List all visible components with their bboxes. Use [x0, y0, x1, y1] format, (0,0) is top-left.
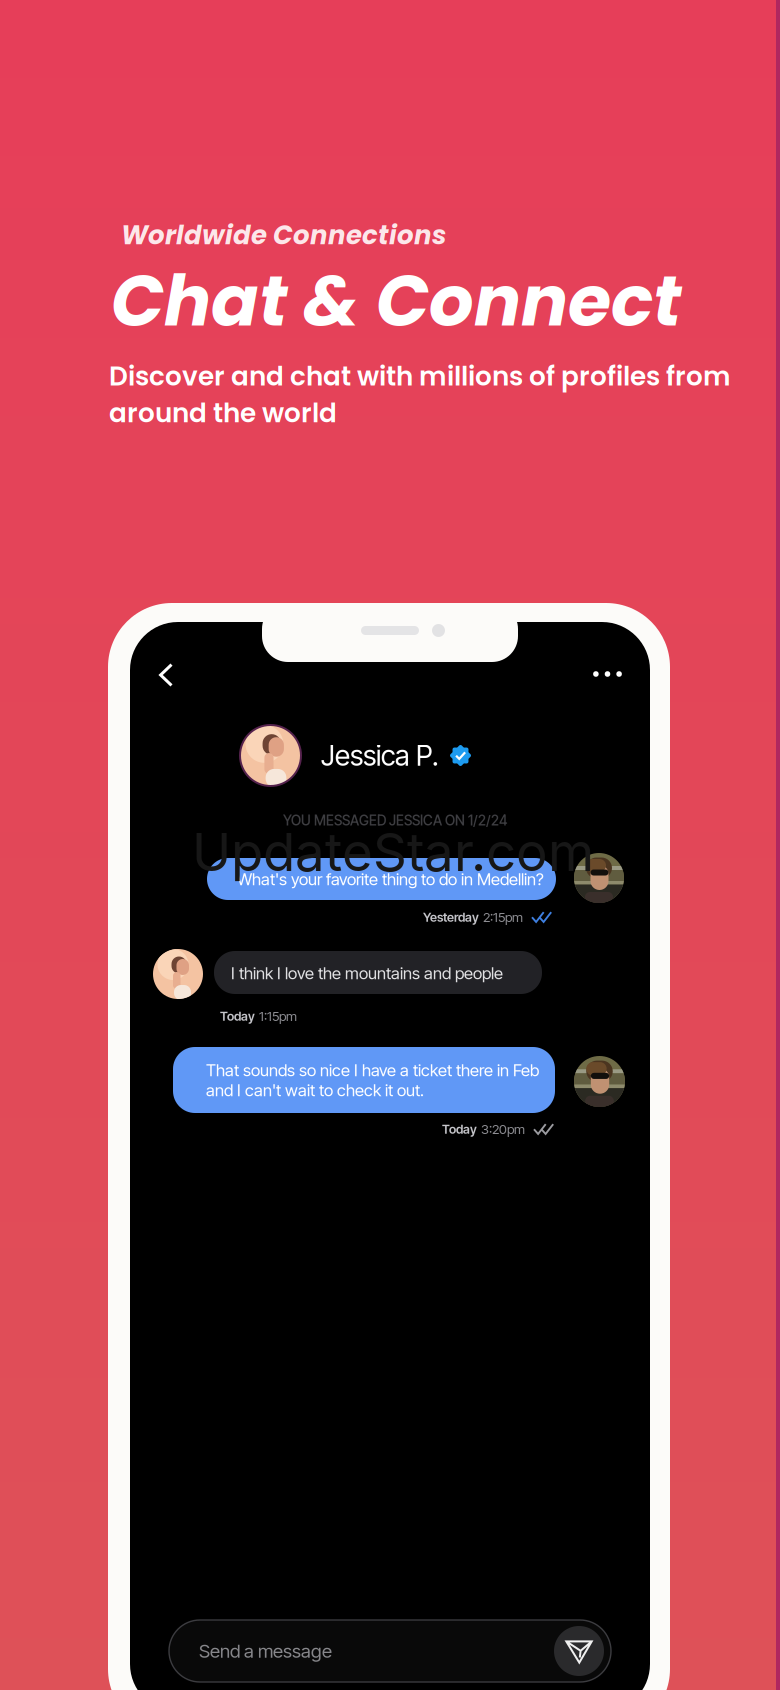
button[interactable]: More options: [583, 659, 632, 689]
staticText: Today: [442, 1121, 477, 1137]
staticText: 3:20pm: [481, 1121, 525, 1137]
staticText: Chat & Connect: [111, 252, 681, 350]
button[interactable]: Jessica P.: [240, 725, 471, 786]
staticText: I think I love the mountains and people: [231, 963, 503, 983]
staticText: Discover and chat with millions of profi…: [109, 358, 731, 431]
staticText: Jessica P.: [321, 739, 439, 772]
staticText: 2:15pm: [483, 909, 523, 925]
staticText: Yesterday: [423, 909, 479, 925]
button[interactable]: Send a message: [169, 1620, 611, 1682]
staticText: That sounds so nice I have a ticket ther…: [206, 1060, 539, 1100]
button[interactable]: Back: [147, 651, 185, 699]
staticText: 1:15pm: [259, 1008, 297, 1024]
staticText: Worldwide Connections: [121, 217, 447, 253]
staticText: What's your favorite thing to do in Mede…: [237, 869, 544, 889]
staticText: Send a message: [199, 1640, 332, 1662]
staticText: UpdateStar.com: [192, 820, 594, 884]
staticText: Today: [220, 1008, 255, 1024]
staticText: YOU MESSAGED JESSICA ON 1/2/24: [283, 812, 507, 829]
